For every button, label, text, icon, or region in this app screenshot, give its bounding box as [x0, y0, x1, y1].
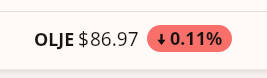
staticText: $ — [78, 26, 89, 52]
staticText: 86.97 — [90, 26, 139, 52]
button[interactable]: OLJE — [0, 12, 267, 69]
staticText: 0.11% — [170, 26, 223, 51]
button[interactable]: Price down — [147, 25, 232, 52]
staticText: OLJE — [34, 27, 75, 52]
other: Price down — [157, 32, 166, 46]
